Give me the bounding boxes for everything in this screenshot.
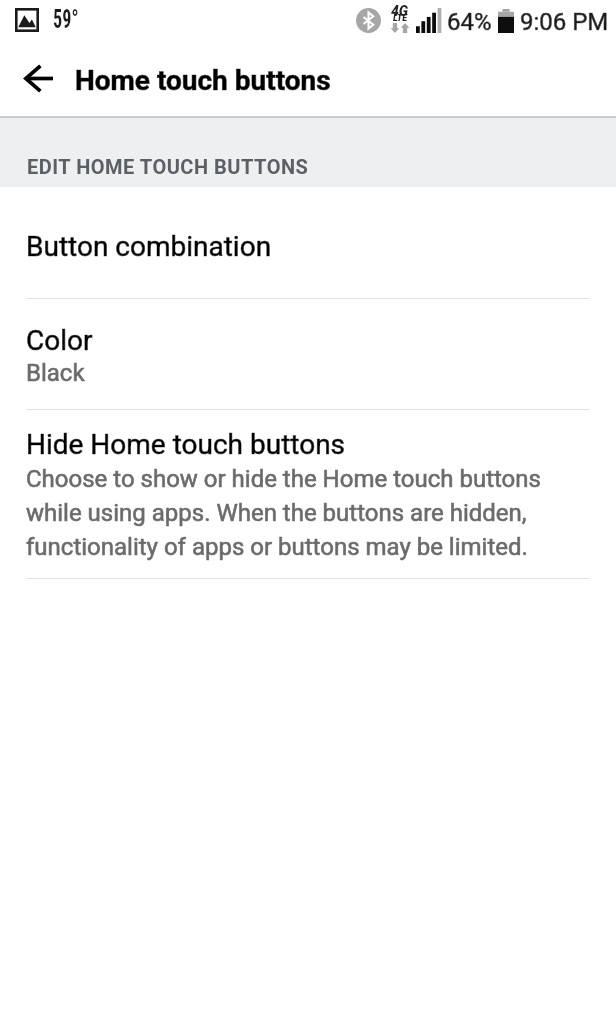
staticText: Color	[26, 324, 93, 357]
staticText: Button combination	[26, 230, 272, 263]
staticText: Choose to show or hide the Home touch bu…	[26, 465, 590, 561]
button[interactable]: Color	[0, 299, 616, 409]
staticText: 9:06 PM	[520, 8, 609, 36]
button[interactable]: Back	[9, 51, 67, 109]
staticText: 4G	[391, 3, 409, 19]
staticText: 64%	[447, 8, 492, 36]
staticText: LTE	[393, 13, 408, 24]
staticText: 9:06 PM	[520, 8, 609, 36]
staticText: Color	[26, 324, 93, 357]
staticText: Black	[26, 359, 85, 387]
staticText: EDIT HOME TOUCH BUTTONS	[27, 155, 309, 178]
button[interactable]: Button combination	[0, 187, 616, 298]
staticText: Button combination	[26, 230, 272, 263]
button[interactable]: Hide Home touch buttons	[0, 410, 616, 578]
staticText: Home touch buttons	[75, 64, 331, 97]
staticText: Home touch buttons	[75, 64, 331, 97]
staticText: Hide Home touch buttons	[26, 428, 346, 461]
staticText: Choose to show or hide the Home touch bu…	[26, 465, 590, 561]
staticText: Hide Home touch buttons	[26, 428, 346, 461]
staticText: 64%	[447, 8, 492, 36]
staticText: Black	[26, 359, 85, 387]
staticText: 59°	[53, 4, 79, 34]
